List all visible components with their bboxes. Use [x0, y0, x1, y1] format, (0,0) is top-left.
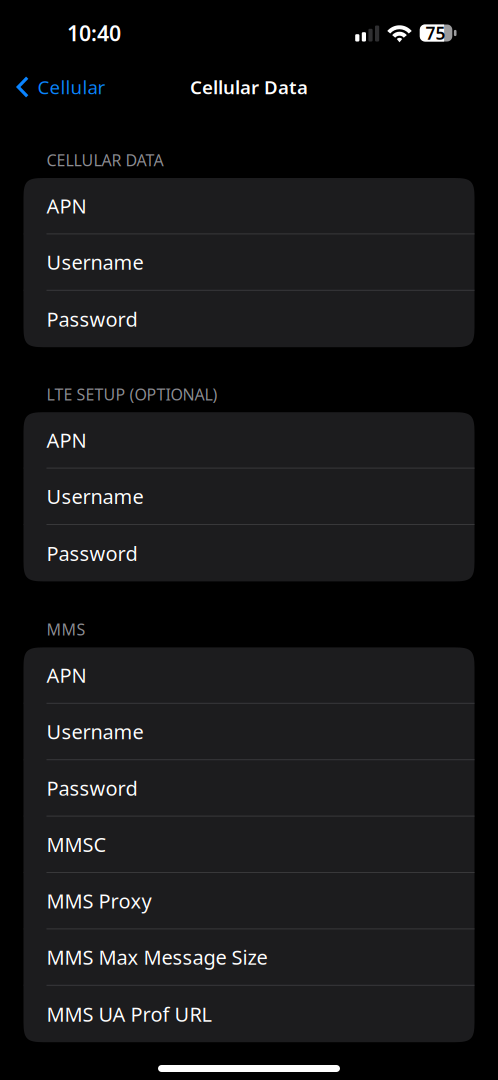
staticText: MMS UA Prof URL — [46, 1001, 211, 1027]
button[interactable]: Password — [23, 760, 474, 817]
staticText: Password — [46, 775, 137, 801]
button[interactable]: APN — [23, 178, 474, 234]
button[interactable]: Password — [23, 291, 474, 347]
button[interactable]: APN — [23, 412, 474, 469]
staticText: Password — [46, 540, 137, 566]
button[interactable]: Username — [23, 234, 474, 291]
staticText: MMSC — [46, 831, 106, 858]
staticText: APN — [46, 192, 86, 219]
button[interactable]: Username — [23, 704, 474, 760]
staticText: 75 — [425, 21, 445, 44]
button[interactable]: Username — [23, 469, 474, 525]
staticText: LTE SETUP (OPTIONAL) — [46, 384, 217, 405]
staticText: APN — [46, 662, 86, 688]
staticText: MMS Max Message Size — [46, 944, 267, 970]
staticText: Username — [46, 249, 143, 275]
staticText: MMS — [46, 619, 85, 640]
staticText: CELLULAR DATA — [46, 149, 163, 171]
staticText: Username — [46, 483, 143, 510]
button[interactable]: Cellular — [0, 65, 117, 109]
staticText: Cellular Data — [190, 75, 308, 99]
staticText: Password — [46, 306, 137, 332]
button[interactable]: MMSC — [23, 817, 474, 873]
button[interactable]: MMS Proxy — [23, 873, 474, 929]
button[interactable]: MMS UA Prof URL — [23, 986, 474, 1042]
button[interactable]: MMS Max Message Size — [23, 929, 474, 986]
staticText: MMS Proxy — [46, 887, 151, 914]
staticText: Username — [46, 718, 143, 745]
staticText: APN — [46, 427, 86, 453]
button[interactable]: Password — [23, 525, 474, 581]
staticText: 10:40 — [67, 19, 121, 47]
staticText: Cellular — [37, 75, 105, 99]
button[interactable]: APN — [23, 647, 474, 704]
